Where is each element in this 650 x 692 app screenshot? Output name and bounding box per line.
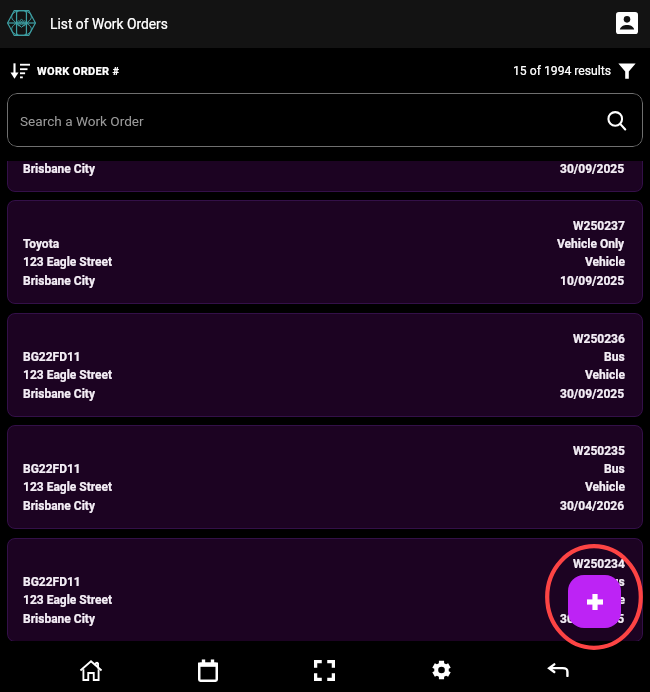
staticText: 30/09/2025 bbox=[560, 612, 625, 626]
button[interactable]: WORK ORDER # bbox=[0, 63, 126, 79]
button[interactable]: BG22FD11 bbox=[7, 538, 643, 641]
staticText: Vehicle bbox=[585, 593, 625, 607]
button[interactable]: Back bbox=[500, 642, 617, 692]
button[interactable]: Home bbox=[33, 642, 149, 692]
staticText: BG22FD11 bbox=[23, 462, 81, 476]
button[interactable]: Search bbox=[607, 111, 629, 133]
staticText: 30/04/2026 bbox=[560, 499, 625, 513]
staticText: 123 Eagle Street bbox=[23, 255, 113, 269]
staticText: W250236 bbox=[573, 332, 625, 346]
button[interactable]: BG22FD11 bbox=[7, 313, 643, 417]
staticText: Vehicle Only bbox=[557, 237, 625, 251]
staticText: Brisbane City bbox=[23, 162, 95, 176]
button[interactable]: Search a Work Order bbox=[7, 93, 643, 147]
staticText: Bus bbox=[604, 575, 625, 589]
staticText: 30/09/2025 bbox=[560, 387, 625, 401]
staticText: Vehicle bbox=[585, 255, 625, 269]
staticText: 123 Eagle Street bbox=[23, 593, 113, 607]
button[interactable]: Filter bbox=[618, 56, 636, 86]
staticText: Brisbane City bbox=[23, 274, 95, 288]
staticText: Brisbane City bbox=[23, 612, 95, 626]
button[interactable]: Toyota bbox=[7, 200, 643, 304]
staticText: 15 of 1994 results bbox=[513, 64, 612, 78]
button[interactable]: Settings bbox=[383, 642, 500, 692]
staticText: BG22FD11 bbox=[23, 350, 81, 364]
staticText: Vehicle bbox=[585, 480, 625, 494]
button[interactable]: Account bbox=[606, 3, 648, 45]
staticText: W250234 bbox=[573, 557, 625, 571]
staticText: Bus bbox=[604, 462, 625, 476]
staticText: Vehicle bbox=[585, 368, 625, 382]
staticText: Toyota bbox=[23, 237, 60, 251]
staticText: List of Work Orders bbox=[50, 16, 168, 32]
staticText: 30/09/2025 bbox=[560, 162, 625, 176]
button[interactable]: Scan bbox=[266, 642, 383, 692]
button[interactable]: BG22FD11 bbox=[7, 161, 643, 192]
staticText: Brisbane City bbox=[23, 499, 95, 513]
staticText: Brisbane City bbox=[23, 387, 95, 401]
staticText: W250237 bbox=[573, 219, 625, 233]
staticText: Bus bbox=[604, 350, 625, 364]
staticText: WORK ORDER # bbox=[37, 65, 120, 78]
button[interactable]: Add work order bbox=[568, 575, 621, 628]
staticText: 10/09/2025 bbox=[560, 274, 625, 288]
staticText: W250235 bbox=[573, 444, 625, 458]
staticText: BG22FD11 bbox=[23, 575, 81, 589]
staticText: Search a Work Order bbox=[20, 113, 144, 129]
staticText: 123 Eagle Street bbox=[23, 368, 113, 382]
button[interactable]: Calendar bbox=[149, 642, 266, 692]
button[interactable]: BG22FD11 bbox=[7, 425, 643, 529]
staticText: 123 Eagle Street bbox=[23, 480, 113, 494]
